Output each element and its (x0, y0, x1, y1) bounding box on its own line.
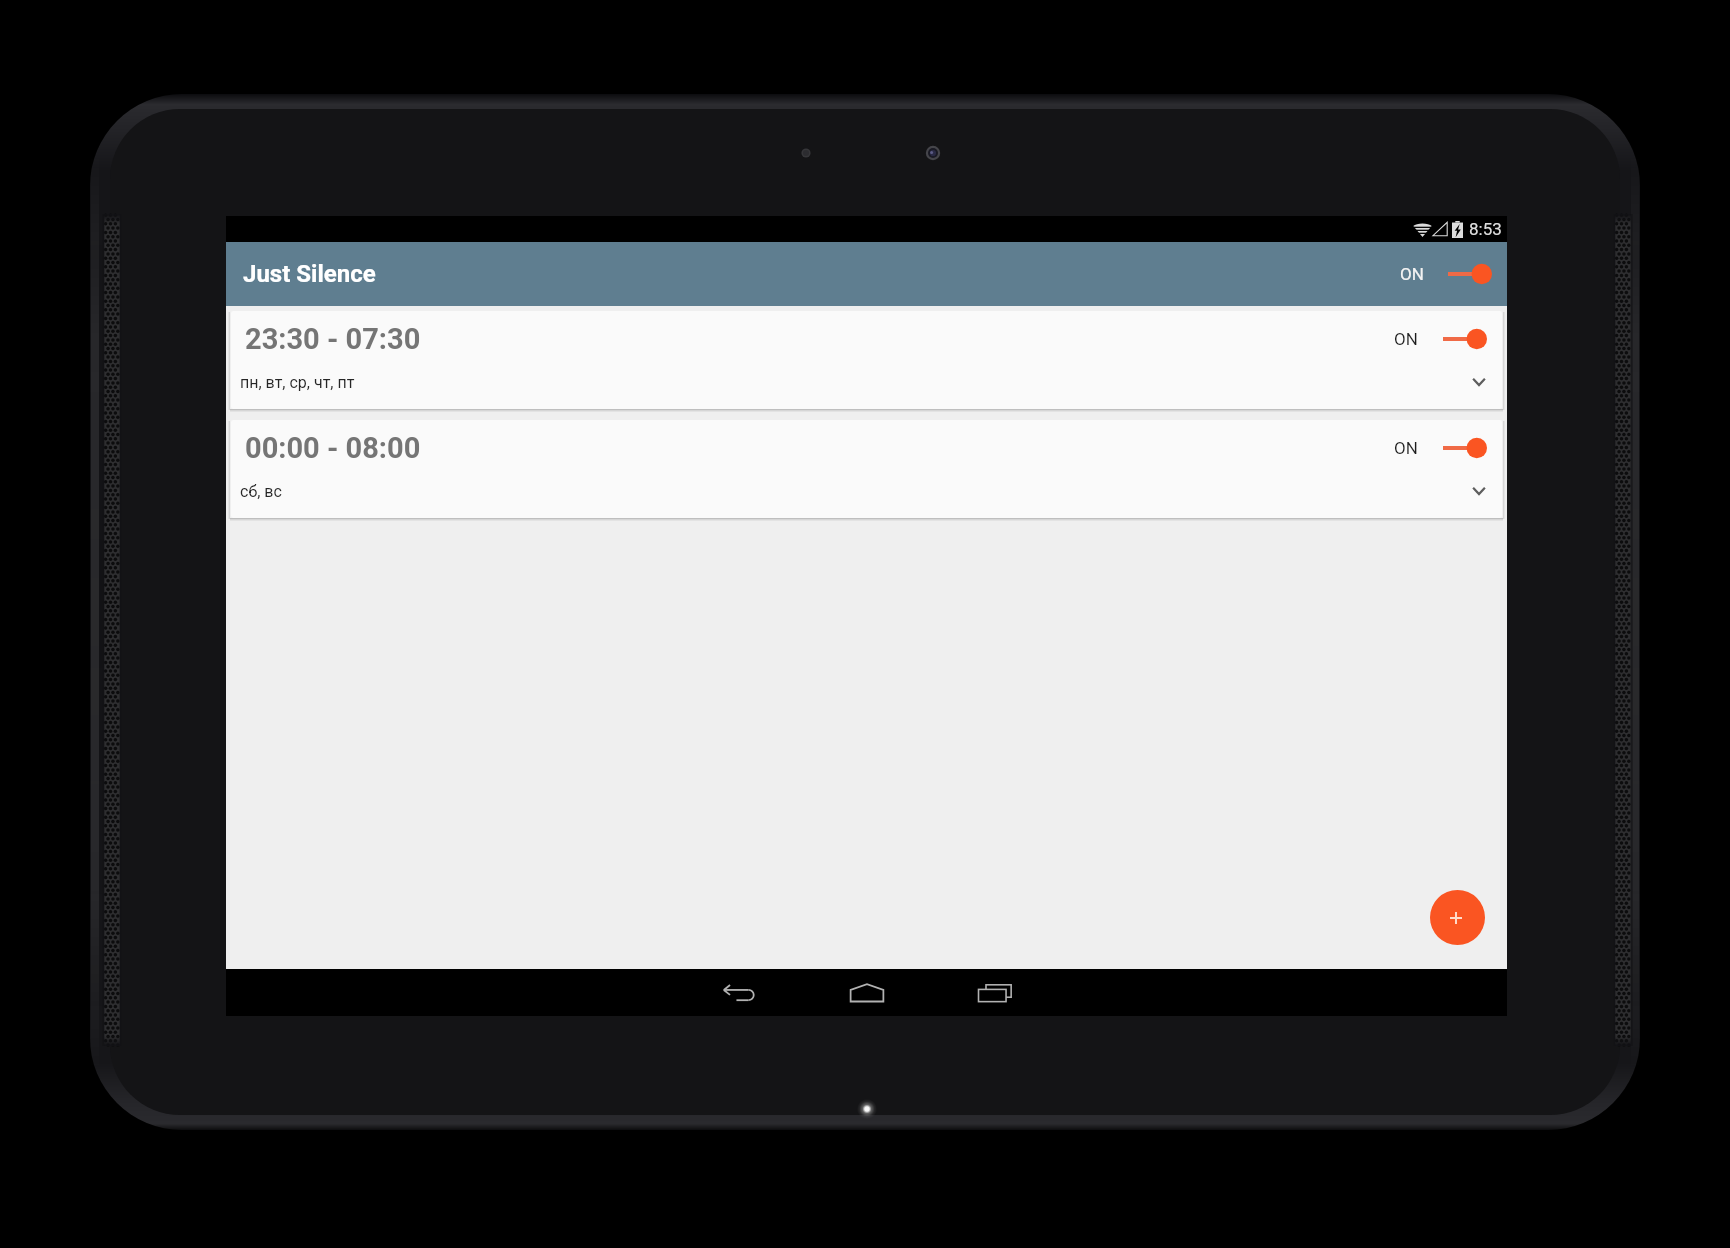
staticText: пн, вт, ср, чт, пт (240, 373, 355, 392)
button[interactable]: 23:30 - 07:30 (231, 311, 1502, 409)
button[interactable]: 00:00 - 08:00 (231, 420, 1502, 518)
staticText: Just Silence (243, 260, 376, 288)
staticText: сб, вс (240, 482, 282, 501)
button[interactable]: Expand (1467, 479, 1491, 503)
button[interactable]: Add alarm (1430, 890, 1485, 945)
staticText: ON (1394, 329, 1418, 349)
button[interactable]: Expand (1467, 370, 1491, 394)
button[interactable]: ON (1394, 437, 1487, 459)
button[interactable]: ON (1394, 328, 1487, 350)
staticText: 8:53 (1469, 219, 1502, 239)
button[interactable]: ON (1400, 263, 1507, 285)
button[interactable]: Home (818, 969, 916, 1016)
button[interactable]: Recent apps (946, 969, 1044, 1016)
staticText: 00:00 - 08:00 (245, 431, 421, 465)
button[interactable]: Back (690, 969, 788, 1016)
staticText: ON (1400, 264, 1424, 284)
staticText: ON (1394, 438, 1418, 458)
staticText: 23:30 - 07:30 (245, 322, 421, 356)
